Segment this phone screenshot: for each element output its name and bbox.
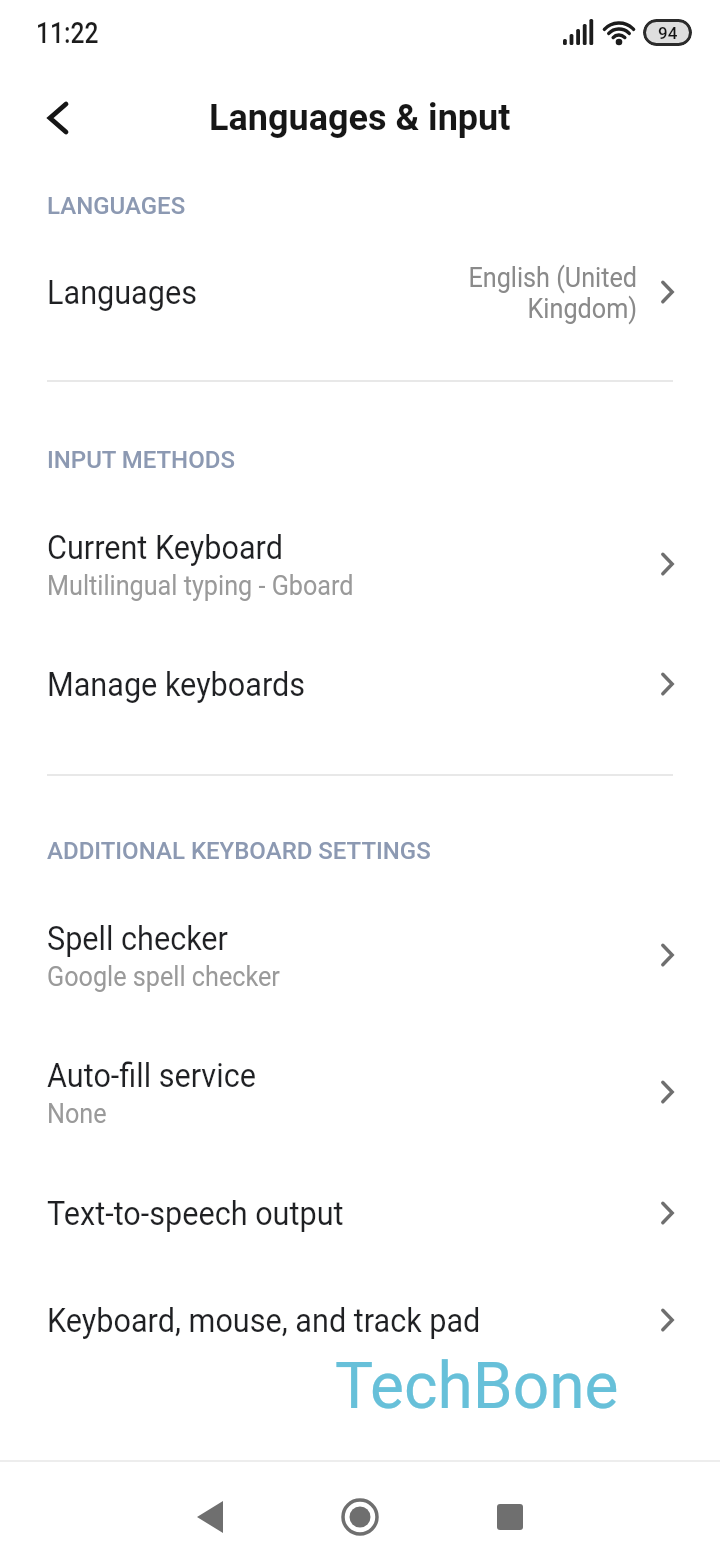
button[interactable]: Spell checker [0,890,720,1020]
staticText: Text-to-speech output [47,1193,344,1233]
button[interactable] [435,1468,585,1560]
button[interactable] [285,1468,435,1560]
staticText: LANGUAGES [47,192,186,220]
staticText: Multilingual typing - Gboard [47,569,354,602]
button[interactable]: Current Keyboard [0,494,720,634]
staticText: Auto-fill service [47,1055,257,1095]
button[interactable] [135,1468,285,1560]
button[interactable] [48,102,68,134]
button[interactable]: Keyboard, mouse, and track pad [0,1262,720,1378]
staticText: Manage keyboards [47,664,305,704]
staticText: English (United Kingdom) [468,261,637,324]
staticText: INPUT METHODS [47,446,235,474]
staticText: Current Keyboard [47,527,284,567]
staticText: None [47,1097,107,1130]
staticText: Languages & input [209,97,511,139]
staticText: Spell checker [47,918,229,958]
staticText: Languages [47,272,197,312]
staticText: Keyboard, mouse, and track pad [47,1300,481,1340]
staticText: TechBone [335,1349,619,1424]
staticText: 94 [658,23,678,43]
button[interactable]: Manage keyboards [0,634,720,734]
staticText: ADDITIONAL KEYBOARD SETTINGS [47,837,431,865]
staticText: Google spell checker [47,960,280,993]
staticText: 11:22 [36,15,99,50]
button[interactable]: Text-to-speech output [0,1164,720,1262]
button[interactable]: Auto-fill service [0,1020,720,1164]
button[interactable]: Languages [0,240,720,344]
